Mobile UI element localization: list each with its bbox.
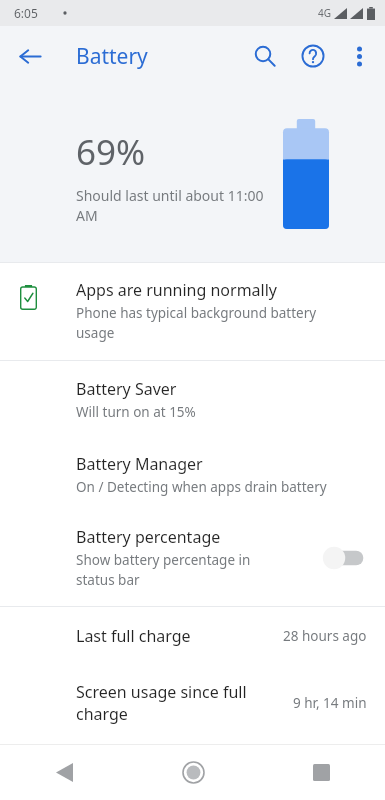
staticText: 69% xyxy=(76,128,146,176)
button[interactable]: Battery percentage toggle xyxy=(321,544,367,572)
button[interactable]: Home xyxy=(129,745,257,800)
button[interactable]: Back xyxy=(0,745,129,800)
button[interactable]: More options xyxy=(337,34,381,78)
staticText: 6:05 xyxy=(14,5,38,21)
staticText: Last full charge xyxy=(76,625,271,647)
button[interactable]: Help xyxy=(289,32,337,80)
button[interactable]: Back xyxy=(6,32,54,80)
button[interactable]: Apps are running normally xyxy=(0,263,385,360)
button[interactable]: Screen usage since full charge xyxy=(0,665,385,743)
staticText: On / Detecting when apps drain battery xyxy=(76,478,327,496)
staticText: 9 hr, 14 min xyxy=(293,694,367,712)
staticText: Battery Saver xyxy=(76,378,177,400)
staticText: 4G xyxy=(318,6,331,20)
staticText: Phone has typical background battery usa… xyxy=(76,304,338,342)
staticText: Apps are running normally xyxy=(76,279,277,301)
button[interactable]: Search xyxy=(241,32,289,80)
staticText: Show battery percentage in status bar xyxy=(76,551,266,589)
staticText: Battery Manager xyxy=(76,453,203,475)
staticText: 28 hours ago xyxy=(283,627,367,645)
staticText: Battery percentage xyxy=(76,526,221,548)
button[interactable]: Recent apps xyxy=(257,745,385,800)
staticText: Will turn on at 15% xyxy=(76,403,196,421)
staticText: Battery xyxy=(76,42,148,71)
button[interactable]: Battery percentage xyxy=(0,511,385,606)
button[interactable]: Battery Saver xyxy=(0,361,385,438)
button[interactable]: Battery Manager xyxy=(0,438,385,511)
staticText: Should last until about 11:00 AM xyxy=(76,186,286,225)
button[interactable]: Last full charge xyxy=(0,607,385,665)
staticText: Screen usage since full charge xyxy=(76,681,281,725)
